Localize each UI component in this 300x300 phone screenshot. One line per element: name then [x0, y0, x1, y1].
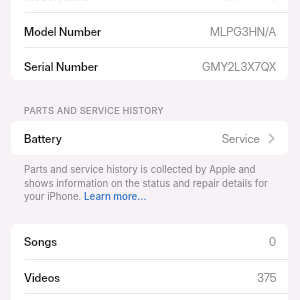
- button[interactable]: Videos: [11, 260, 288, 295]
- button[interactable]: Battery: [11, 121, 288, 156]
- button[interactable]: Parts and service history is collected b…: [24, 164, 274, 202]
- other: Open battery service details: [269, 134, 274, 143]
- staticText: PARTS AND SERVICE HISTORY: [24, 105, 164, 116]
- staticText: 375: [257, 271, 277, 285]
- staticText: MLPG3HN/A: [210, 25, 277, 39]
- staticText: Model Number: [24, 25, 102, 39]
- staticText: Service: [222, 132, 260, 146]
- button[interactable]: Songs: [11, 224, 288, 259]
- button[interactable]: Serial Number: [11, 49, 288, 84]
- staticText: Model Name: [24, 0, 90, 4]
- staticText: Songs: [24, 235, 58, 249]
- staticText: 0: [269, 235, 277, 249]
- button[interactable]: Model Number: [11, 14, 288, 49]
- staticText: GMY2L3X7QX: [202, 60, 277, 74]
- staticText: Battery: [24, 132, 62, 146]
- staticText: Serial Number: [24, 60, 99, 74]
- button[interactable]: Model Name: [11, 0, 288, 14]
- staticText: Videos: [24, 271, 61, 285]
